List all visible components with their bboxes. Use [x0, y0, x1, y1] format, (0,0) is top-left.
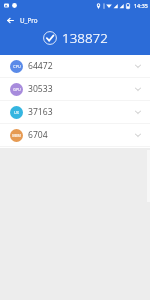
button[interactable]: UX [0, 101, 150, 123]
staticText: 30533 [28, 83, 53, 95]
button[interactable]: MEM [0, 124, 150, 146]
staticText: GPU [13, 87, 21, 92]
staticText: 37163 [28, 106, 53, 118]
button[interactable]: Back [0, 11, 20, 29]
staticText: UX [14, 110, 19, 115]
staticText: 64472 [28, 60, 53, 72]
staticText: MEM [12, 133, 21, 138]
button[interactable]: GPU [0, 78, 150, 100]
staticText: 6704 [28, 129, 48, 141]
button[interactable]: CPU [0, 55, 150, 77]
staticText: 138872 [62, 29, 108, 46]
staticText: 14:35 [134, 2, 148, 9]
staticText: CPU [13, 64, 21, 69]
staticText: U_Pro [20, 16, 38, 25]
